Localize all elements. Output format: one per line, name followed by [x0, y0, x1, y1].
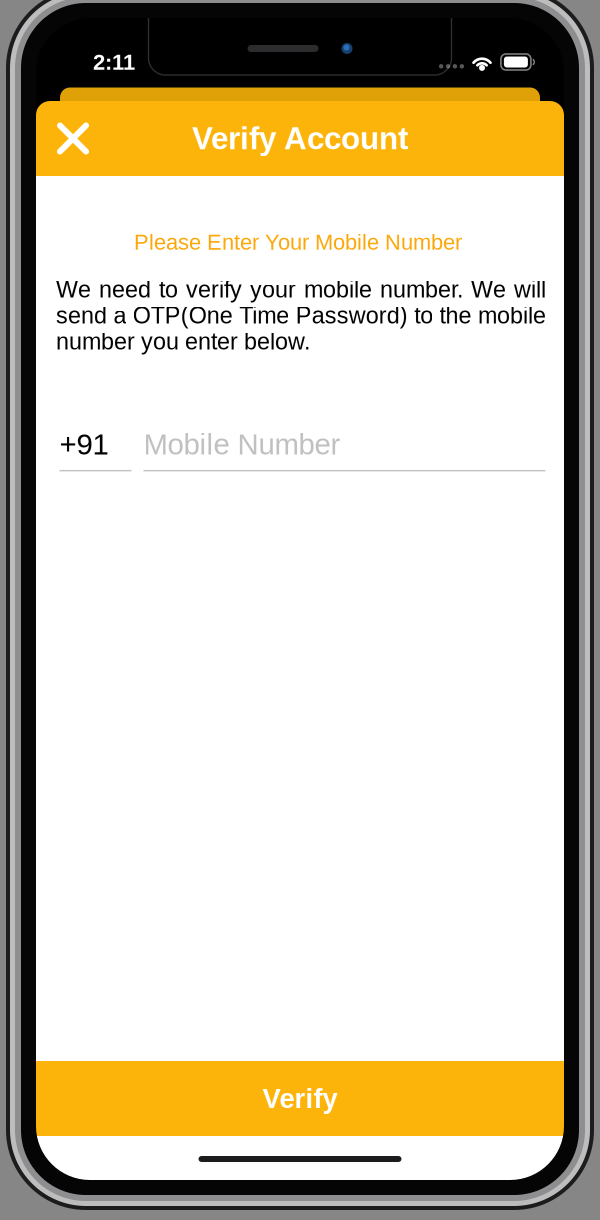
staticText: +91 — [59, 428, 108, 461]
staticText: Mobile Number — [143, 428, 340, 461]
staticText: to — [414, 302, 433, 328]
button[interactable]: Verify — [36, 1061, 564, 1136]
staticText: a — [113, 302, 126, 328]
staticText: Password) — [296, 302, 408, 328]
staticText: your — [250, 276, 296, 302]
staticText: 2:11 — [93, 50, 136, 74]
staticText: We — [471, 276, 506, 302]
staticText: send — [56, 302, 107, 328]
button[interactable]: +91 — [59, 429, 131, 471]
staticText: Verify — [262, 1083, 337, 1114]
staticText: verify — [186, 276, 242, 302]
staticText: Verify Account — [192, 121, 408, 156]
staticText: Time — [239, 302, 289, 328]
button[interactable]: Close — [44, 109, 102, 167]
staticText: need — [99, 276, 151, 302]
staticText: number. — [380, 276, 463, 302]
staticText: number you enter below. — [56, 328, 310, 354]
button[interactable]: Mobile Number — [143, 429, 545, 471]
staticText: to — [159, 276, 178, 302]
staticText: the — [440, 302, 472, 328]
staticText: OTP(One — [133, 302, 233, 328]
staticText: We — [56, 276, 91, 302]
staticText: mobile — [304, 276, 372, 302]
staticText: will — [514, 276, 546, 302]
staticText: mobile — [478, 302, 546, 328]
staticText: Please Enter Your Mobile Number — [134, 230, 462, 254]
